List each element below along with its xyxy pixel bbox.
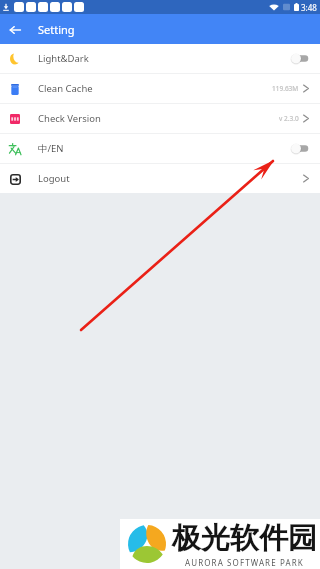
- button[interactable]: 中/EN: [0, 134, 320, 163]
- button[interactable]: Light&Dark: [0, 44, 320, 73]
- staticText: Light&Dark: [38, 52, 89, 65]
- staticText: 3:48: [301, 2, 317, 13]
- button[interactable]: Clean Cache: [0, 74, 320, 103]
- button[interactable]: Check Version: [0, 104, 320, 133]
- button[interactable]: Back: [0, 15, 29, 44]
- button[interactable]: Toggle: [291, 53, 309, 64]
- staticText: 119.63M: [272, 84, 299, 93]
- staticText: v 2.3.0: [279, 114, 299, 123]
- button[interactable]: Logout: [0, 164, 320, 193]
- staticText: AURORA SOFTWARE PARK: [185, 557, 304, 568]
- staticText: 中/EN: [38, 142, 64, 155]
- staticText: Clean Cache: [38, 82, 93, 95]
- button[interactable]: Toggle: [291, 143, 309, 154]
- staticText: Check Version: [38, 112, 101, 125]
- staticText: Setting: [38, 22, 75, 37]
- staticText: 极光软件园: [172, 520, 317, 557]
- staticText: Logout: [38, 172, 70, 185]
